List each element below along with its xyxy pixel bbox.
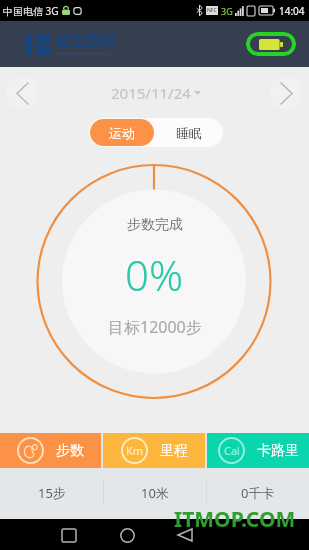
staticText: 健宝股份 (56, 32, 116, 51)
staticText: 中国电信 3G (3, 4, 59, 18)
button[interactable]: Device battery (246, 32, 296, 56)
staticText: 3G (221, 5, 233, 17)
button[interactable]: Recent apps (54, 520, 84, 550)
button[interactable]: 睡眠 (155, 118, 222, 147)
button[interactable]: 15步 (0, 468, 103, 518)
staticText: Km (126, 443, 144, 458)
button[interactable]: Cal (207, 433, 309, 468)
staticText: 运动 (109, 125, 135, 141)
staticText: 目标12000步 (108, 316, 202, 338)
staticText: ITMOP.COM (174, 505, 296, 534)
button[interactable]: Next day (270, 77, 303, 110)
button[interactable]: Km (103, 433, 205, 468)
staticText: 10米 (141, 484, 169, 502)
staticText: NFC (207, 7, 217, 14)
staticText: 步数 (56, 442, 84, 460)
staticText: 0千卡 (241, 484, 275, 502)
staticText: 15步 (38, 484, 66, 502)
staticText: 2015/11/24 (111, 83, 191, 103)
staticText: Cal (224, 443, 240, 458)
staticText: 卡路里 (257, 442, 299, 460)
button[interactable]: 0千卡 (207, 468, 309, 518)
button[interactable]: 运动 (90, 119, 154, 146)
staticText: 步数完成 (127, 216, 183, 234)
staticText: 14:04 (279, 4, 305, 18)
staticText: 睡眠 (176, 125, 202, 141)
staticText: 里程 (160, 442, 188, 460)
button[interactable]: 步数 (0, 433, 101, 468)
button[interactable]: 10米 (104, 468, 206, 518)
staticText: JIANBAOGUFEN TECHNOLOGY (56, 51, 113, 56)
button[interactable]: Previous day (6, 77, 39, 110)
button[interactable]: Home (112, 520, 142, 550)
button[interactable]: Back (170, 520, 200, 550)
staticText: 0% (125, 246, 184, 303)
